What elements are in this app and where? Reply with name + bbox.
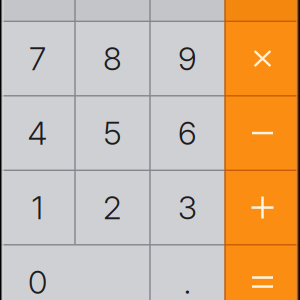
button[interactable]: 4 [0, 96, 75, 170]
button[interactable]: 7 [0, 22, 75, 95]
button[interactable]: Negate [75, 0, 150, 21]
button[interactable]: Subtract [225, 96, 300, 170]
staticText: 0 [28, 263, 47, 300]
staticText: 5 [103, 114, 121, 152]
button[interactable]: Clear [0, 0, 75, 21]
staticText: 4 [27, 114, 47, 152]
button[interactable]: . [150, 245, 225, 300]
staticText: 6 [178, 114, 197, 152]
button[interactable]: 0 [0, 245, 150, 300]
button[interactable]: 8 [75, 22, 150, 95]
button[interactable]: 5 [75, 96, 150, 170]
button[interactable]: Percent [150, 0, 225, 21]
button[interactable]: 9 [150, 22, 225, 95]
button[interactable]: 3 [150, 171, 225, 244]
staticText: 7 [29, 39, 46, 78]
button[interactable]: Multiply [225, 22, 300, 95]
staticText: 9 [178, 39, 197, 78]
staticText: 1 [31, 188, 43, 227]
button[interactable]: 2 [75, 171, 150, 244]
staticText: 2 [103, 188, 122, 227]
staticText: 3 [178, 188, 197, 227]
button[interactable]: 6 [150, 96, 225, 170]
staticText: 8 [103, 39, 122, 78]
button[interactable]: Equals [225, 245, 300, 300]
button[interactable]: Divide [225, 0, 300, 21]
button[interactable]: Add [225, 171, 300, 244]
staticText: . [183, 263, 191, 300]
button[interactable]: 1 [0, 171, 75, 244]
